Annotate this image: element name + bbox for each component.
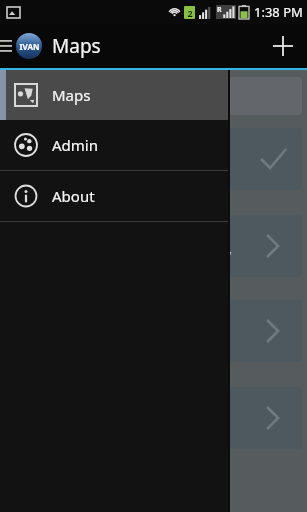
staticText: Maps [52,85,91,105]
button[interactable]: Admin [0,120,228,170]
staticText: Admin [52,135,98,155]
button[interactable] [226,77,302,115]
button[interactable]: About [0,171,228,221]
staticText: 2 [187,7,193,19]
button[interactable] [226,387,302,449]
staticText: IVAN [19,41,40,52]
staticText: s/ [222,248,232,263]
button[interactable] [226,215,302,277]
staticText: R [217,5,222,15]
staticText: Maps [52,33,101,59]
button[interactable]: Maps [0,70,228,120]
button[interactable]: Open navigation drawer [0,24,14,68]
staticText: About [52,186,95,206]
button[interactable] [226,128,302,190]
button[interactable] [226,300,302,362]
button[interactable]: Add [259,24,307,68]
staticText: 1:38 PM [254,3,303,21]
